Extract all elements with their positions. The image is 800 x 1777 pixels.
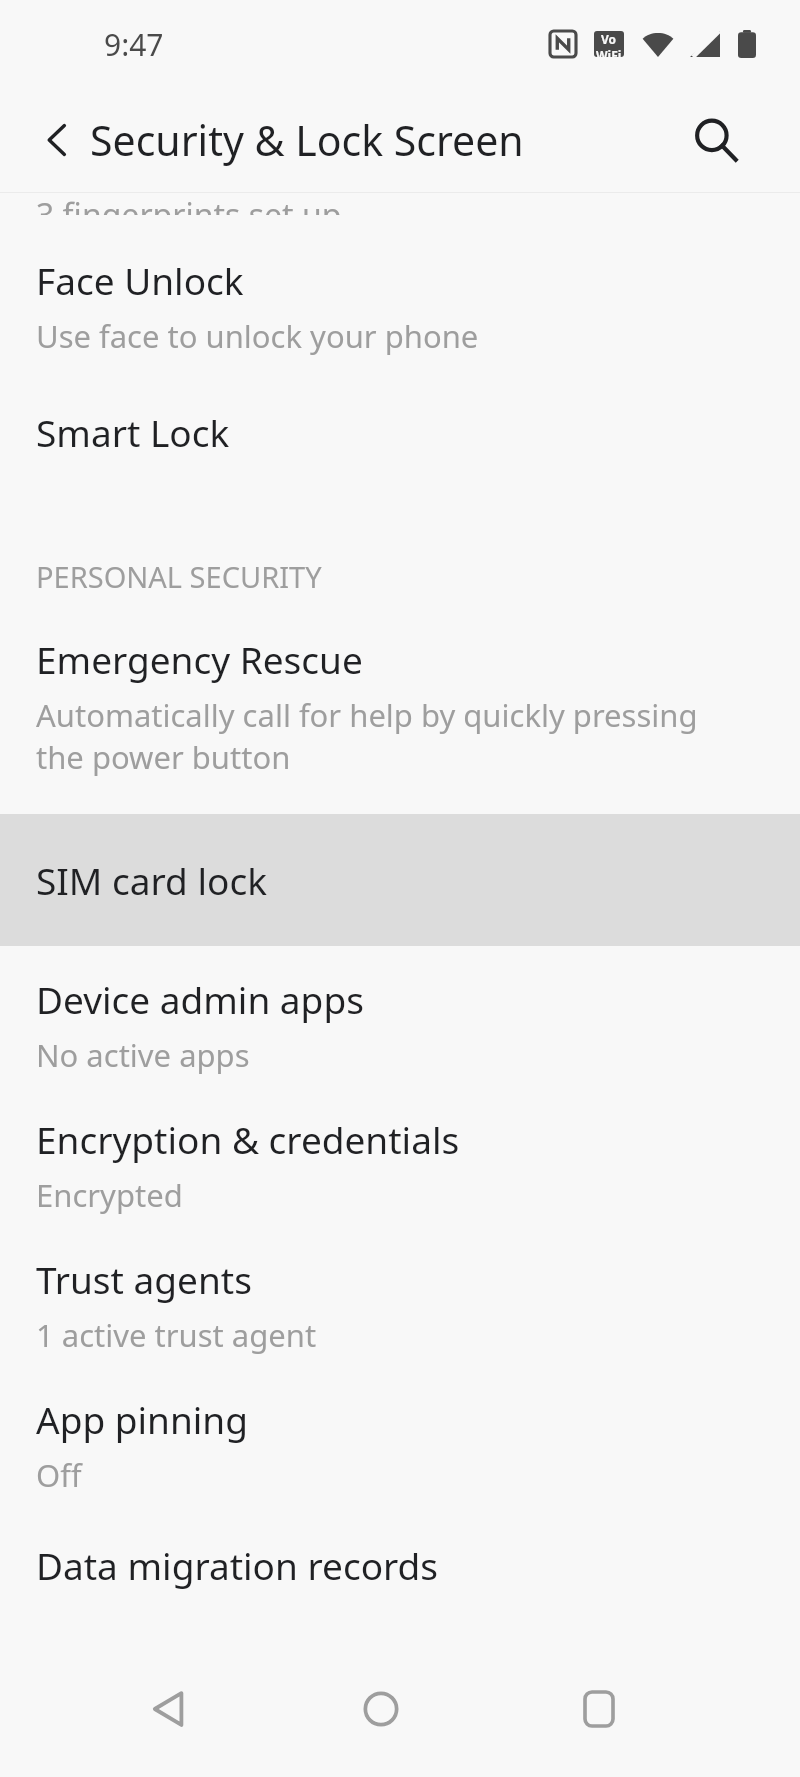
button[interactable]: App pinning (0, 1394, 800, 1496)
button[interactable]: 3 fingerprints set up (0, 193, 800, 215)
button[interactable]: Home (339, 1667, 423, 1751)
button[interactable]: Emergency Rescue (0, 634, 800, 778)
staticText: Use face to unlock your phone (36, 315, 479, 357)
staticText: SIM card lock (36, 855, 267, 905)
staticText: Emergency Rescue (36, 634, 363, 684)
staticText: App pinning (36, 1394, 248, 1444)
staticText: Encryption & credentials (36, 1114, 460, 1164)
staticText: Off (36, 1454, 82, 1496)
button[interactable]: PERSONAL SECURITY (0, 557, 800, 596)
staticText: 3 fingerprints set up (36, 193, 342, 215)
staticText: Encrypted (36, 1174, 183, 1216)
button[interactable]: Data migration records (0, 1540, 800, 1590)
staticText: Face Unlock (36, 255, 244, 305)
staticText: Security & Lock Screen (90, 112, 524, 168)
button[interactable]: Trust agents (0, 1254, 800, 1356)
button[interactable]: Smart Lock (0, 407, 800, 457)
staticText: 1 active trust agent (36, 1314, 317, 1356)
staticText: PERSONAL SECURITY (36, 557, 322, 596)
button[interactable]: Back (12, 94, 104, 186)
button[interactable]: Face Unlock (0, 255, 800, 357)
staticText: Data migration records (36, 1540, 439, 1590)
staticText: Smart Lock (36, 407, 230, 457)
button[interactable]: Back (128, 1667, 212, 1751)
button[interactable]: Encryption & credentials (0, 1114, 800, 1216)
button[interactable]: Device admin apps (0, 974, 800, 1076)
button[interactable]: Recent apps (557, 1667, 641, 1751)
staticText: 9:47 (104, 24, 164, 65)
staticText: Vo (601, 31, 617, 47)
button[interactable]: Search (670, 94, 762, 186)
staticText: Device admin apps (36, 974, 364, 1024)
staticText: Trust agents (36, 1254, 252, 1304)
button[interactable]: SIM card lock (0, 814, 800, 946)
staticText: Automatically call for help by quickly p… (36, 694, 740, 778)
staticText: No active apps (36, 1034, 250, 1076)
staticText: WiFi (596, 47, 622, 57)
